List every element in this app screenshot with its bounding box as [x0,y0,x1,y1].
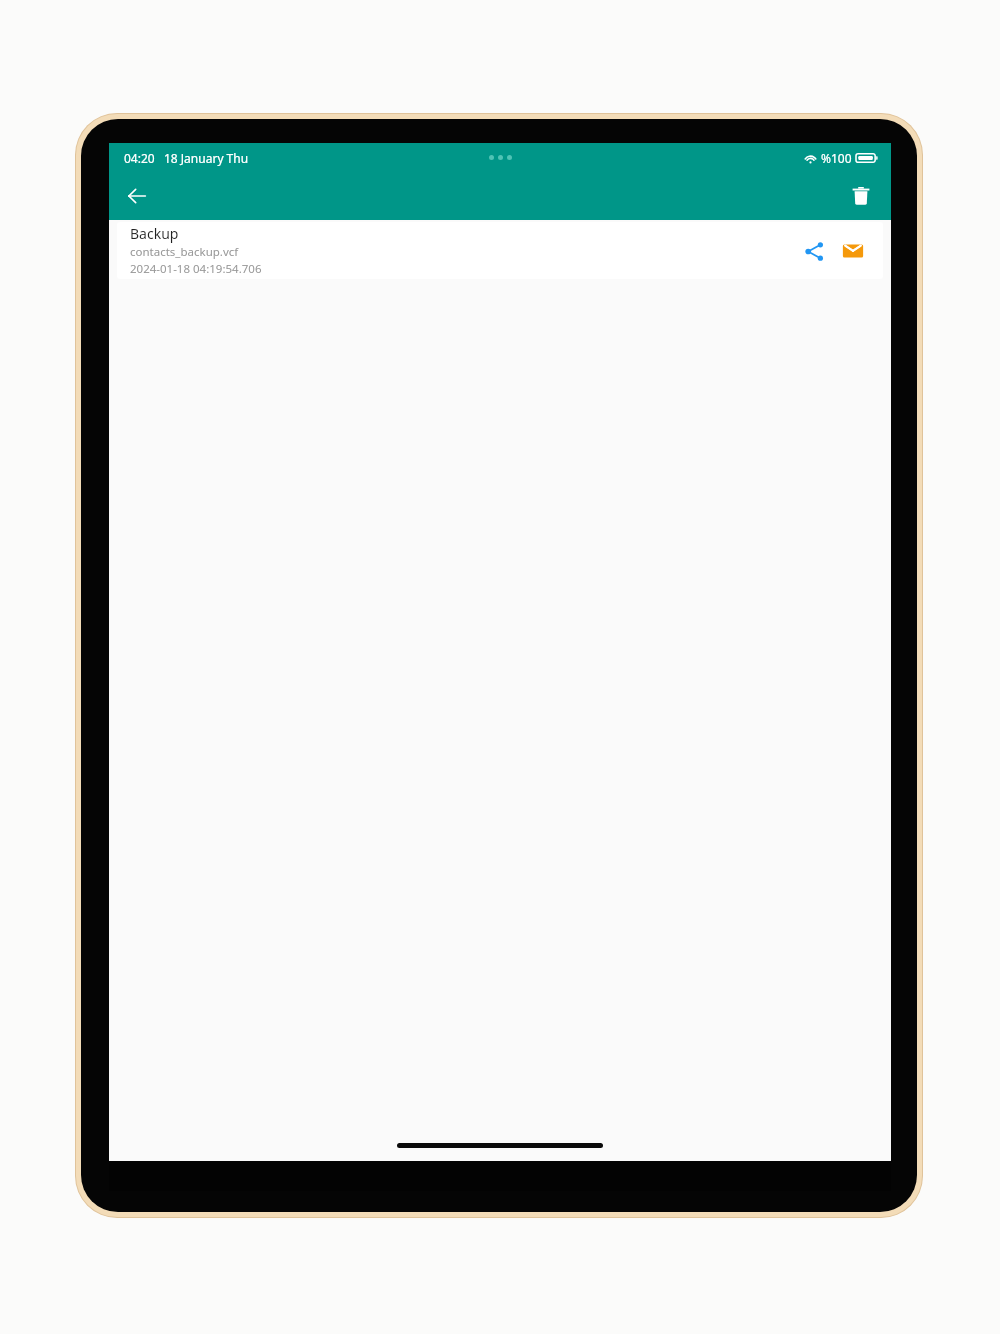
button[interactable]: Backup [117,222,883,279]
button[interactable]: Delete [841,176,881,216]
button[interactable]: Share [797,234,831,268]
staticText: 18 January Thu [164,150,249,166]
button[interactable]: Back [117,176,157,216]
staticText: %100 [821,150,852,166]
staticText: 2024-01-18 04:19:54.706 [130,261,262,277]
staticText: contacts_backup.vcf [130,244,239,260]
staticText: Backup [130,224,179,243]
button[interactable]: Send by email [836,234,870,268]
staticText: 04:20 [124,150,155,166]
